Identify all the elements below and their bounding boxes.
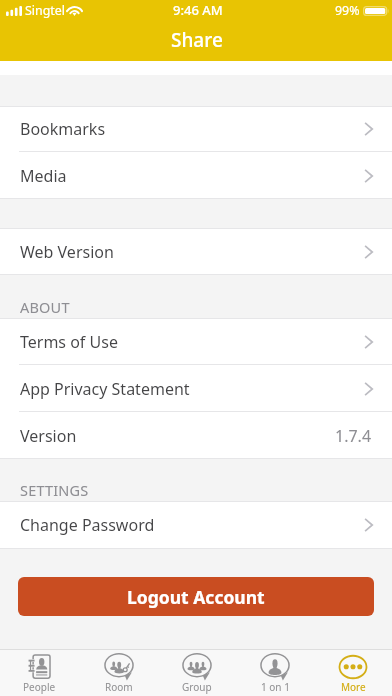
button[interactable]: Logout Account bbox=[18, 577, 374, 616]
button[interactable]: Bookmarks bbox=[0, 106, 392, 152]
staticText: Group bbox=[182, 680, 212, 694]
staticText: Change Password bbox=[20, 514, 155, 536]
staticText: People bbox=[23, 680, 56, 694]
staticText: Bookmarks bbox=[20, 118, 106, 140]
staticText: More bbox=[341, 680, 366, 694]
staticText: 9:46 AM bbox=[173, 1, 223, 19]
button[interactable]: Change Password bbox=[0, 501, 392, 549]
staticText: ABOUT bbox=[20, 297, 70, 317]
button[interactable]: Group bbox=[158, 650, 236, 696]
button[interactable]: Version bbox=[0, 412, 392, 459]
button[interactable]: Web Version bbox=[0, 228, 392, 275]
staticText: Version bbox=[20, 425, 77, 447]
staticText: Media bbox=[20, 165, 67, 187]
staticText: Terms of Use bbox=[20, 331, 118, 353]
staticText: Room bbox=[105, 680, 133, 694]
staticText: SETTINGS bbox=[20, 480, 89, 500]
button[interactable]: 1 on 1 bbox=[236, 650, 314, 696]
staticText: Share bbox=[171, 27, 223, 53]
button[interactable]: Terms of Use bbox=[0, 318, 392, 365]
staticText: App Privacy Statement bbox=[20, 378, 190, 400]
button[interactable]: App Privacy Statement bbox=[0, 365, 392, 412]
staticText: 99% bbox=[335, 2, 360, 19]
button[interactable]: People bbox=[0, 650, 79, 696]
button[interactable]: More bbox=[314, 650, 392, 696]
staticText: Web Version bbox=[20, 241, 114, 263]
staticText: 1.7.4 bbox=[335, 425, 372, 447]
button[interactable]: Room bbox=[79, 650, 158, 696]
staticText: Logout Account bbox=[127, 585, 265, 609]
staticText: 1 on 1 bbox=[261, 680, 290, 694]
button[interactable]: Media bbox=[0, 152, 392, 199]
staticText: Singtel bbox=[25, 2, 65, 19]
